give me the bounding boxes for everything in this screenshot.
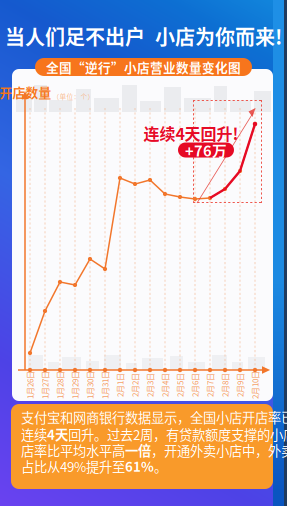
staticText: 1月31日 xyxy=(91,379,119,391)
staticText: 2月6日 xyxy=(183,379,207,391)
staticText: +76万 xyxy=(185,139,227,161)
staticText: 2月2日 xyxy=(123,379,147,391)
staticText: 2月9日 xyxy=(228,379,252,391)
staticText: 当人们足不出户 小店为你而来! xyxy=(5,21,282,50)
staticText: 连续4天回升! xyxy=(143,121,238,145)
staticText: 2月1日 xyxy=(108,379,132,391)
staticText: 2月3日 xyxy=(138,379,162,391)
staticText: 全国“逆行”小店营业数量变化图 xyxy=(46,58,241,76)
staticText: 1月29日 xyxy=(61,379,89,391)
staticText: 2月8日 xyxy=(213,379,237,391)
staticText: 2月10日 xyxy=(241,379,269,391)
staticText: （单位：个） xyxy=(52,91,94,101)
staticText: 1月28日 xyxy=(46,379,74,391)
staticText: 开店数量 xyxy=(0,83,51,101)
staticText: 店率比平均水平高一倍，开通外卖小店中，外卖生意 xyxy=(21,440,287,459)
staticText: 2月5日 xyxy=(168,379,192,391)
staticText: 2月7日 xyxy=(198,379,222,391)
staticText: 1月27日 xyxy=(31,379,59,391)
staticText: 2月4日 xyxy=(153,379,177,391)
staticText: 连续4天回升。过去2周，有贷款额度支撑的小店，开 xyxy=(21,424,287,443)
staticText: 占比从49%提升至61%。 xyxy=(21,456,167,475)
staticText: 支付宝和网商银行数据显示，全国小店开店率已经 xyxy=(21,408,287,426)
staticText: 1月30日 xyxy=(76,379,104,391)
staticText: 1月26日 xyxy=(16,379,44,391)
